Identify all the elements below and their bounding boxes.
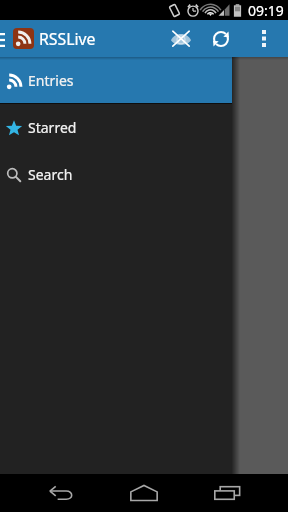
button[interactable]: Refresh: [199, 20, 243, 57]
staticText: Entries: [28, 71, 74, 90]
button[interactable]: More options: [243, 20, 285, 57]
button[interactable]: Recents: [205, 474, 249, 512]
button[interactable]: Starred: [0, 104, 232, 151]
button[interactable]: Home: [122, 474, 166, 512]
button[interactable]: Search: [0, 151, 232, 198]
staticText: RSSLive: [39, 28, 96, 50]
staticText: 09:19: [248, 1, 284, 20]
staticText: Starred: [28, 118, 77, 137]
button[interactable]: Back: [39, 474, 83, 512]
staticText: Search: [28, 165, 73, 184]
button[interactable]: Hide read: [162, 20, 199, 57]
button[interactable]: Open navigation drawer: [0, 30, 8, 50]
button[interactable]: Entries: [0, 57, 232, 104]
